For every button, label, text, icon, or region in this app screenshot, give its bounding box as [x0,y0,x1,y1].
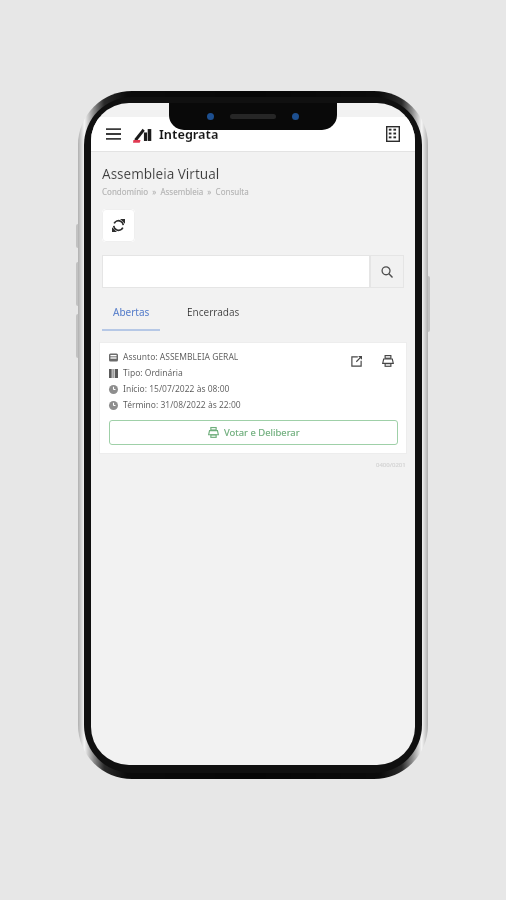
button[interactable]: Pesquisar [370,255,404,288]
button[interactable]: Menu [102,123,124,145]
staticText: Votar e Deliberar [224,426,300,439]
button[interactable]: Imprimir [378,351,398,371]
button[interactable]: Condomínio [382,123,404,145]
staticText: Abertas [113,305,150,319]
button[interactable]: Atualizar [102,209,135,242]
staticText: Condomínio » Assembleia » Consulta [102,186,249,197]
staticText: Assembleia Virtual [102,165,220,183]
button[interactable]: Encerradas [187,305,240,319]
staticText: 0400/0201 [376,461,406,469]
button[interactable]: Votar e Deliberar [109,420,398,445]
staticText: Assunto: ASSEMBLEIA GERAL [123,351,239,363]
staticText: Tipo: Ordinária [123,367,183,379]
button[interactable] [102,255,370,288]
staticText: Término: 31/08/2022 às 22:00 [123,399,241,411]
button[interactable]: Abertas [102,302,160,331]
staticText: Início: 15/07/2022 às 08:00 [123,383,230,395]
staticText: Encerradas [187,305,240,319]
staticText: Integrata [159,126,219,143]
button[interactable]: Abrir [346,351,366,371]
